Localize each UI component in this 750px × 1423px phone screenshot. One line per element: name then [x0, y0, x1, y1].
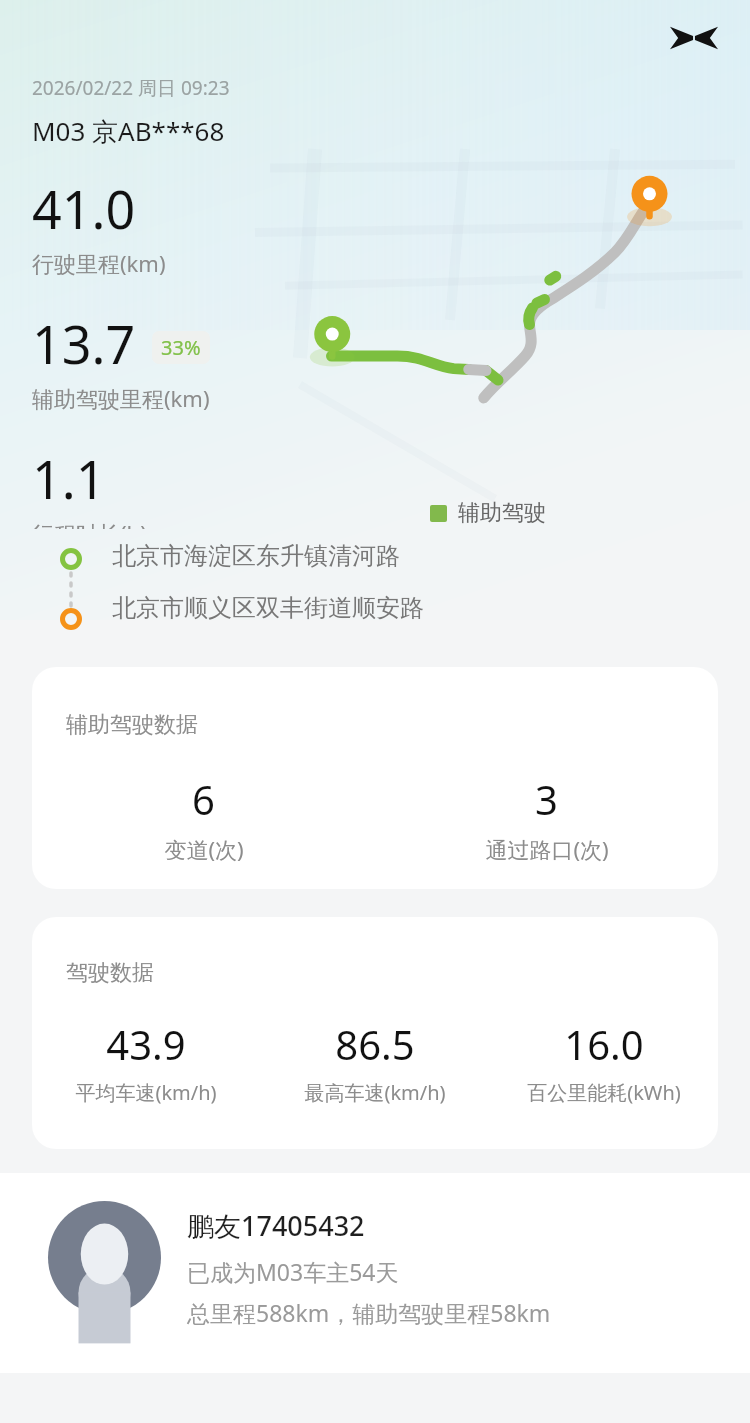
- staticText: 16.0: [564, 1017, 644, 1071]
- button[interactable]: 鹏友17405432: [0, 1173, 750, 1373]
- staticText: 百公里能耗(kWh): [527, 1079, 681, 1106]
- staticText: M03 京AB***68: [32, 113, 225, 149]
- button[interactable]: 3: [375, 772, 718, 864]
- staticText: 43.9: [106, 1017, 186, 1071]
- button[interactable]: 辅助驾驶数据: [32, 667, 718, 889]
- button[interactable]: XPeng logo: [666, 16, 722, 60]
- staticText: 13.7: [32, 308, 136, 379]
- staticText: 1.1: [32, 443, 106, 514]
- staticText: 变道(次): [164, 834, 244, 864]
- staticText: 最高车速(km/h): [304, 1079, 446, 1106]
- staticText: 行程时长(h): [32, 518, 147, 529]
- staticText: 驾驶数据: [66, 959, 154, 987]
- staticText: 6: [192, 772, 215, 826]
- staticText: 行驶里程(km): [32, 248, 166, 278]
- staticText: 33%: [161, 334, 201, 361]
- staticText: 已成为M03车主54天: [187, 1256, 399, 1287]
- staticText: 总里程588km，辅助驾驶里程58km: [187, 1297, 551, 1328]
- button[interactable]: 驾驶数据: [32, 917, 718, 1149]
- button[interactable]: 6: [32, 772, 375, 864]
- staticText: 北京市海淀区东升镇清河路: [112, 541, 400, 571]
- button[interactable]: 86.5: [260, 1017, 489, 1106]
- staticText: 鹏友17405432: [187, 1207, 365, 1244]
- staticText: 2026/02/22 周日 09:23: [32, 75, 230, 101]
- staticText: 北京市顺义区双丰街道顺安路: [112, 593, 424, 623]
- button[interactable]: 43.9: [32, 1017, 260, 1106]
- staticText: 辅助驾驶: [458, 499, 546, 527]
- staticText: 辅助驾驶里程(km): [32, 383, 210, 413]
- staticText: 3: [535, 772, 558, 826]
- staticText: 通过路口(次): [485, 834, 609, 864]
- staticText: 41.0: [32, 173, 136, 244]
- staticText: 平均车速(km/h): [75, 1079, 217, 1106]
- staticText: 辅助驾驶数据: [66, 711, 198, 739]
- staticText: 86.5: [335, 1017, 415, 1071]
- button[interactable]: 16.0: [489, 1017, 718, 1106]
